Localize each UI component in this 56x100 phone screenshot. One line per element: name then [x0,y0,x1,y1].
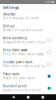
button[interactable]: Recent apps [41,96,44,99]
button[interactable]: Patrol mode [0,70,56,82]
staticText: Select language for search [3,16,39,20]
staticText: Keep the device screen awake [3,52,44,56]
button[interactable]: Grid size [0,22,56,34]
button[interactable]: Language [0,10,56,22]
button[interactable]: Keep device awake [0,46,56,58]
button[interactable]: Back [12,96,15,99]
staticText: Allow submitting [3,36,27,40]
button[interactable]: Constant patrol mode [0,58,56,70]
button[interactable]: Rounded pencil [0,82,56,94]
staticText: Rounded pencil [3,84,27,88]
staticText: Always submit to search engine [3,40,46,44]
staticText: Settings [3,5,19,10]
button[interactable]: Allow submitting [0,34,56,46]
staticText: Patrol mode enabled at all times [3,64,47,68]
staticText: Language [3,12,16,16]
staticText: Keep device awake [3,48,28,52]
staticText: Enable the patrol mode [3,76,36,80]
staticText: Grid size [3,24,15,28]
staticText: Patrol mode [3,72,20,76]
button[interactable]: Home [27,96,30,99]
staticText: Squares or rounded pencil [3,88,41,92]
staticText: Number of rows and columns [3,28,43,32]
staticText: Constant patrol mode [3,60,33,64]
